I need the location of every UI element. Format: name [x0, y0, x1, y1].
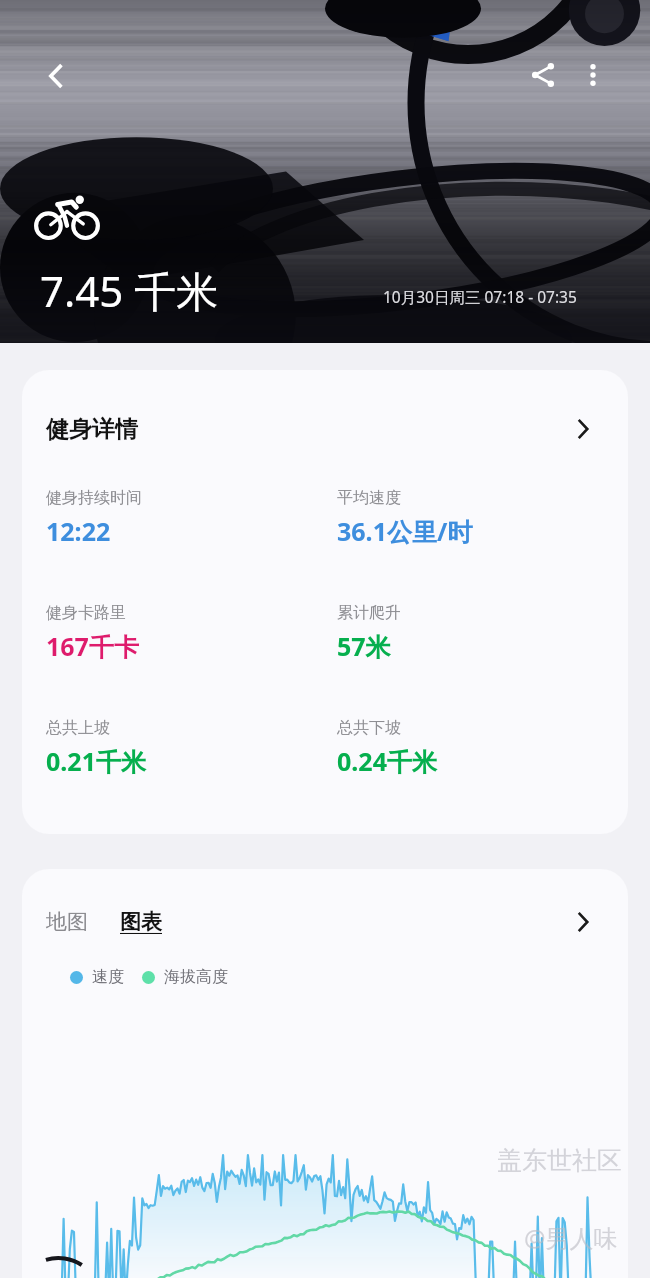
staticText: 12:22: [46, 514, 111, 548]
staticText: 0.21千米: [46, 744, 146, 778]
staticText: 总共上坡: [46, 718, 110, 738]
staticText: 10月30日周三 07:18 - 07:35: [383, 286, 577, 307]
button[interactable]: 健身详情: [22, 370, 628, 488]
staticText: 速度: [92, 967, 124, 987]
staticText: 167千卡: [46, 629, 139, 663]
staticText: @男人味: [524, 1221, 618, 1254]
staticText: 平均速度: [337, 488, 401, 508]
button[interactable]: Share: [515, 47, 571, 103]
staticText: 海拔高度: [164, 967, 228, 987]
staticText: 地图: [46, 909, 88, 935]
staticText: 健身持续时间: [46, 488, 142, 508]
staticText: 盖东世社区: [497, 1145, 622, 1176]
staticText: 图表: [120, 909, 162, 935]
button[interactable]: Open chart: [568, 907, 598, 937]
button[interactable]: Back: [28, 48, 84, 104]
staticText: 健身详情: [46, 415, 138, 444]
staticText: 0.24千米: [337, 744, 437, 778]
button[interactable]: 图表: [120, 909, 162, 935]
staticText: 7.45 千米: [40, 262, 219, 319]
button[interactable]: More options: [565, 47, 621, 103]
staticText: 健身卡路里: [46, 603, 126, 623]
staticText: 57米: [337, 629, 391, 663]
staticText: 总共下坡: [337, 718, 401, 738]
staticText: 36.1公里/时: [337, 514, 473, 548]
button[interactable]: 地图: [46, 909, 88, 935]
staticText: 累计爬升: [337, 603, 401, 623]
